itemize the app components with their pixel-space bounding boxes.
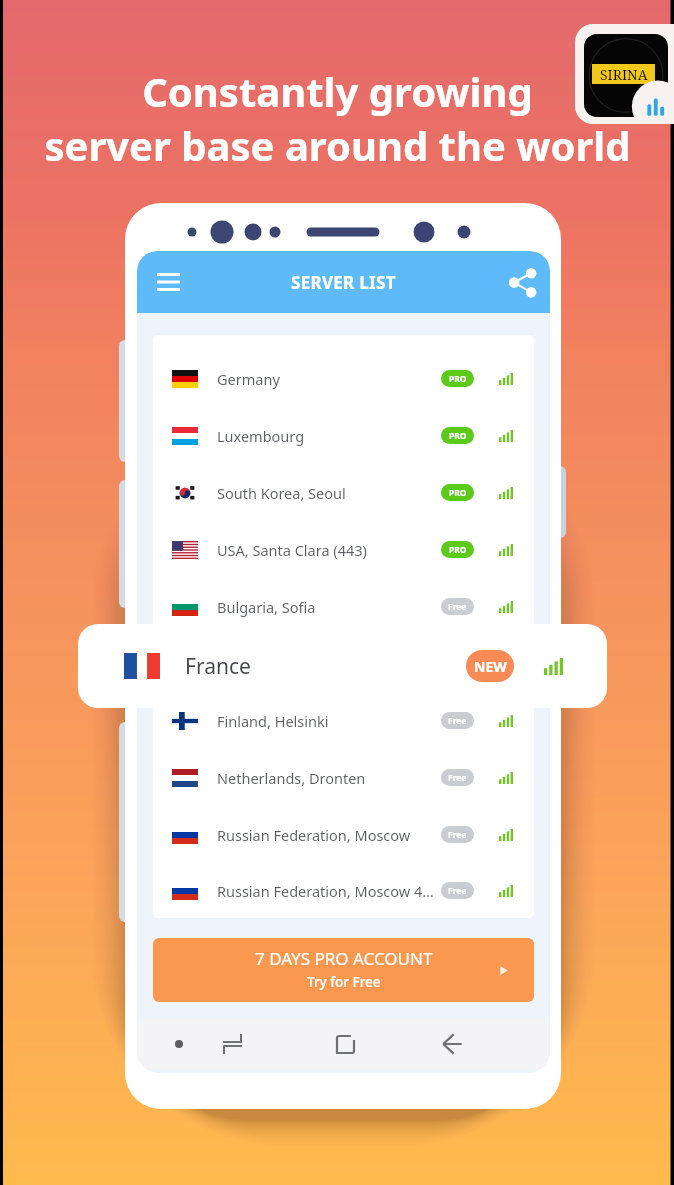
button[interactable]: Home bbox=[328, 1027, 362, 1061]
staticText: Free bbox=[448, 601, 467, 613]
button[interactable]: Russian Federation, Moscow 4… bbox=[153, 863, 534, 918]
staticText: 7 DAYS PRO ACCOUNT bbox=[255, 947, 433, 970]
button[interactable]: Assistant bbox=[163, 1028, 195, 1060]
staticText: NEW bbox=[474, 657, 507, 676]
button[interactable]: Share bbox=[505, 265, 539, 299]
staticText: Try for Free bbox=[307, 973, 381, 991]
button[interactable]: Russian Federation, Moscow bbox=[153, 806, 534, 863]
button[interactable]: Recent apps bbox=[215, 1027, 249, 1061]
staticText: France bbox=[217, 654, 263, 674]
staticText: PRO bbox=[449, 544, 467, 556]
staticText: Free bbox=[448, 829, 467, 841]
staticText: Netherlands, Dronten bbox=[217, 768, 366, 788]
staticText: Constantly growing bbox=[142, 64, 533, 118]
staticText: Luxembourg bbox=[217, 426, 305, 446]
staticText: USA, Santa Clara (443) bbox=[217, 540, 367, 560]
staticText: SERVER LIST bbox=[291, 271, 396, 294]
button[interactable]: France bbox=[78, 624, 607, 708]
staticText: Finland, Helsinki bbox=[217, 711, 329, 731]
staticText: SIRINA bbox=[600, 65, 648, 84]
button[interactable]: France bbox=[153, 635, 534, 692]
staticText: Russian Federation, Moscow bbox=[217, 825, 411, 845]
staticText: South Korea, Seoul bbox=[217, 483, 346, 503]
staticText: Free bbox=[448, 772, 467, 784]
button[interactable]: 7 DAYS PRO ACCOUNT bbox=[153, 938, 534, 1002]
button[interactable]: Open navigation menu bbox=[151, 265, 185, 299]
staticText: server base around the world bbox=[44, 118, 631, 172]
staticText: PRO bbox=[449, 487, 467, 499]
button[interactable]: South Korea, Seoul bbox=[153, 464, 534, 521]
button[interactable]: USA, Santa Clara (443) bbox=[153, 521, 534, 578]
staticText: Free bbox=[448, 715, 467, 727]
button[interactable]: Back bbox=[435, 1027, 469, 1061]
staticText: Russian Federation, Moscow 4… bbox=[217, 881, 434, 901]
staticText: Free bbox=[448, 885, 467, 897]
button[interactable]: Bulgaria, Sofia bbox=[153, 578, 534, 635]
staticText: PRO bbox=[449, 430, 467, 442]
staticText: PRO bbox=[449, 658, 467, 670]
button[interactable]: Luxembourg bbox=[153, 407, 534, 464]
button[interactable]: Finland, Helsinki bbox=[153, 692, 534, 749]
staticText: PRO bbox=[449, 373, 467, 385]
staticText: Germany bbox=[217, 369, 280, 389]
button[interactable]: Netherlands, Dronten bbox=[153, 749, 534, 806]
button[interactable]: Germany bbox=[153, 350, 534, 407]
staticText: Bulgaria, Sofia bbox=[217, 597, 316, 617]
staticText: France bbox=[185, 652, 251, 681]
